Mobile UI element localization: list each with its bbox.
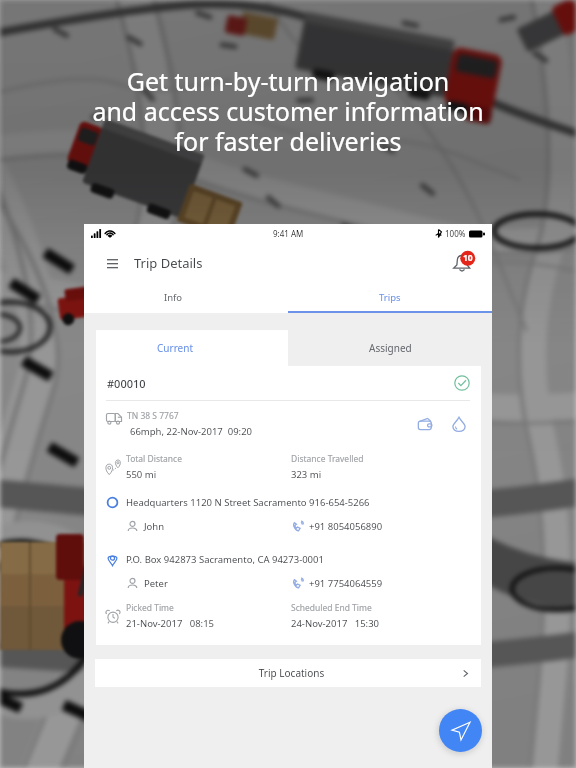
- staticText: P.O. Box 942873 Sacramento, CA 94273-000…: [126, 553, 324, 566]
- button[interactable]: Info: [84, 283, 288, 311]
- staticText: Assigned: [369, 341, 412, 355]
- button[interactable]: Notifications: [446, 247, 478, 279]
- staticText: 9:41 AM: [273, 228, 304, 239]
- staticText: 550 mi: [126, 468, 157, 481]
- staticText: +91 7754064559: [309, 577, 383, 590]
- staticText: +91 8054056890: [309, 520, 383, 533]
- staticText: 10: [463, 252, 473, 264]
- button[interactable]: Menu: [94, 245, 130, 281]
- staticText: Peter: [144, 577, 291, 590]
- staticText: Picked Time: [126, 602, 174, 614]
- button[interactable]: Trip Locations: [95, 659, 481, 687]
- staticText: Scheduled End Time: [291, 602, 372, 614]
- staticText: Trips: [379, 291, 401, 304]
- staticText: Trip Locations: [114, 666, 469, 680]
- staticText: TN 38 S 7767: [127, 410, 179, 422]
- staticText: Get turn-by-turn navigation and access c…: [0, 64, 576, 158]
- staticText: Total Distance: [126, 453, 182, 465]
- staticText: John: [144, 520, 291, 533]
- button[interactable]: Navigate: [439, 709, 482, 752]
- staticText: 323 mi: [291, 468, 322, 481]
- staticText: 21-Nov-2017 08:15: [126, 617, 215, 630]
- staticText: 100%: [445, 228, 466, 239]
- button[interactable]: Current: [96, 330, 288, 366]
- button[interactable]: Fuel: [448, 413, 470, 435]
- button[interactable]: Trips: [288, 283, 492, 311]
- staticText: Trip Details: [134, 254, 203, 272]
- staticText: #00010: [107, 376, 146, 391]
- button[interactable]: Assigned: [288, 330, 481, 366]
- staticText: 66mph, 22-Nov-2017 09:20: [130, 425, 253, 438]
- staticText: Headquarters 1120 N Street Sacramento 91…: [126, 496, 370, 509]
- staticText: Distance Travelled: [291, 453, 364, 465]
- button[interactable]: Expenses: [414, 413, 436, 435]
- staticText: Info: [164, 291, 183, 304]
- staticText: Current: [157, 341, 193, 355]
- staticText: 24-Nov-2017 15:30: [291, 617, 380, 630]
